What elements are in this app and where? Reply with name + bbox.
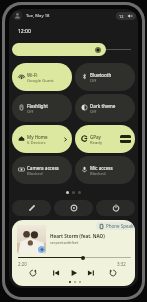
staticText: Blocked — [90, 171, 106, 177]
staticText: Blocked — [27, 171, 43, 177]
button[interactable]: Replay 5 seconds — [27, 267, 39, 279]
staticText: Ready — [90, 140, 103, 146]
button[interactable]: Forward 30 seconds — [107, 267, 119, 279]
staticText: Off — [27, 109, 34, 115]
staticText: GPay — [90, 134, 101, 140]
button[interactable]: Phone Speaker — [96, 222, 135, 230]
button[interactable]: Profile — [13, 11, 22, 20]
staticText: 3:32 — [117, 261, 126, 267]
button[interactable]: GPay — [75, 125, 135, 153]
staticText: 6 Devices — [27, 140, 46, 146]
button[interactable]: Wi-Fi — [12, 63, 72, 91]
staticText: serpentwithfeet — [50, 240, 79, 245]
staticText: Wi-Fi — [27, 72, 38, 78]
staticText: Flashlight — [27, 103, 48, 109]
button[interactable]: Flashlight — [12, 94, 72, 122]
button[interactable]: Dark theme — [75, 94, 135, 122]
button[interactable]: Edit — [12, 200, 51, 216]
staticText: 12:00 — [18, 28, 31, 35]
staticText: Off — [90, 109, 97, 115]
button[interactable]: My Home — [12, 125, 72, 153]
staticText: Mic access — [90, 165, 113, 171]
button[interactable]: Power — [96, 200, 135, 216]
staticText: Camera access — [27, 165, 59, 171]
button[interactable]: Camera access — [12, 156, 72, 184]
button[interactable]: Status — [116, 12, 136, 20]
button[interactable]: Next — [85, 267, 97, 279]
button[interactable]: Brightness — [12, 43, 106, 56]
staticText: 12 — [119, 14, 124, 19]
button[interactable]: Settings — [54, 200, 93, 216]
button[interactable]: Bluetooth — [75, 63, 135, 91]
staticText: Tue, May 18 — [26, 13, 50, 19]
staticText: 2:20 — [18, 261, 27, 267]
staticText: Dark theme — [90, 103, 116, 109]
staticText: My Home — [27, 134, 48, 140]
button[interactable]: Previous — [50, 267, 62, 279]
staticText: Heart Storm (feat. NAO) — [50, 233, 105, 239]
staticText: Phone Speaker — [106, 223, 135, 229]
button[interactable]: Play — [68, 267, 80, 279]
staticText: Bluetooth — [90, 72, 112, 78]
staticText: Off — [90, 78, 97, 84]
staticText: Google Guest — [27, 78, 54, 84]
button[interactable]: Mic access — [75, 156, 135, 184]
